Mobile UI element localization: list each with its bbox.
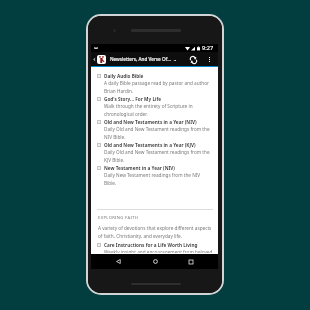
staticText: Old and New Testaments in a Year (KJV) — [104, 142, 196, 148]
staticText: Newsletters, And Verse Of... — [110, 56, 171, 62]
button[interactable]: Recent apps — [182, 254, 200, 269]
button[interactable]: Daily Audio Bible — [97, 72, 213, 95]
button[interactable]: Old and New Testaments in a Year (KJV) — [97, 141, 213, 164]
staticText: EXPLORING FAITH — [98, 215, 139, 221]
button[interactable]: Back — [109, 254, 127, 269]
staticText: Old and New Testaments in a Year (NIV) — [104, 119, 197, 125]
staticText: New Testament in a Year (NIV) — [104, 165, 175, 171]
staticText: Daily New Testament readings from the NI… — [104, 172, 213, 186]
staticText: A daily Bible passage read by pastor and… — [104, 80, 213, 94]
button[interactable]: Refresh — [187, 53, 200, 66]
staticText: Care Instructions for a Life Worth Livin… — [104, 242, 198, 248]
staticText: Weekly insight and encouragement from be… — [104, 249, 213, 253]
staticText: A variety of devotions that explore diff… — [98, 225, 213, 239]
staticText: 9:27 — [202, 44, 214, 52]
button[interactable]: Care Instructions for a Life Worth Livin… — [97, 241, 213, 254]
button[interactable]: Home — [146, 254, 164, 269]
staticText: God's Story... For My Life — [104, 96, 162, 102]
button[interactable]: God's Story... For My Life — [97, 95, 213, 118]
staticText: Walk through the entirety of Scripture i… — [104, 103, 213, 117]
button[interactable]: Old and New Testaments in a Year (NIV) — [97, 118, 213, 141]
button[interactable]: Navigate up — [91, 52, 97, 66]
button[interactable]: More options — [204, 54, 215, 65]
staticText: Daily Old and New Testament readings fro… — [104, 126, 213, 140]
staticText: Daily Audio Bible — [104, 73, 144, 79]
staticText: Daily Old and New Testament readings fro… — [104, 149, 213, 163]
button[interactable]: New Testament in a Year (NIV) — [97, 164, 213, 187]
